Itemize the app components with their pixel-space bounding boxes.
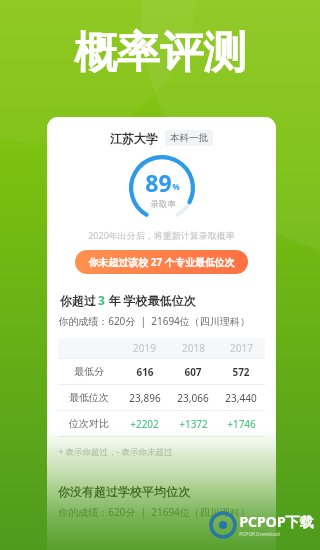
staticText: 江苏大学 [110, 131, 158, 146]
staticText: 你的成绩：620分 | 21694位（四川理科） [58, 505, 250, 519]
staticText: 2019 [133, 341, 156, 355]
button[interactable]: 最低位次 [58, 385, 265, 410]
staticText: 你未超过该校 27 个专业最低位次 [88, 255, 235, 269]
staticText: + 表示你超过，- 表示你未超过 [58, 446, 173, 458]
staticText: +1372 [179, 417, 208, 431]
staticText: 位次对比 [69, 417, 109, 430]
staticText: 3 [98, 292, 105, 308]
staticText: 本科一批 [170, 132, 208, 144]
staticText: 2018 [182, 341, 205, 355]
staticText: 23,896 [129, 391, 161, 405]
staticText: 23,440 [225, 391, 257, 405]
staticText: 89 [145, 167, 172, 198]
staticText: 2017 [230, 341, 253, 355]
staticText: 23,066 [177, 391, 209, 405]
button[interactable]: 最低分 [58, 359, 265, 384]
staticText: 最低位次 [69, 391, 109, 404]
staticText: 最低分 [74, 365, 104, 378]
button[interactable]: 位次对比 [58, 411, 265, 436]
staticText: 2020年出分后，将重新计算录取概率 [88, 229, 235, 241]
staticText: 616 [136, 365, 154, 379]
staticText: 概率评测 [74, 26, 246, 80]
staticText: 你没有超过学校平均位次 [58, 484, 190, 499]
staticText: +1746 [227, 417, 256, 431]
staticText: PCPOP.Download [239, 531, 280, 538]
staticText: 572 [232, 365, 250, 379]
staticText: 607 [184, 365, 202, 379]
staticText: 年 学校最低位次 [105, 292, 196, 308]
button[interactable]: 江苏大学 [47, 117, 276, 550]
staticText: 你的成绩：620分 | 21694位（四川理科） [58, 314, 250, 328]
staticText: % [172, 181, 180, 192]
staticText: 录取率 [150, 199, 176, 210]
button[interactable]: 你未超过该校 27 个专业最低位次 [75, 250, 248, 274]
staticText: +2202 [130, 417, 159, 431]
staticText: PCPOP下载 [239, 512, 314, 531]
staticText: 你超过 [58, 292, 98, 308]
